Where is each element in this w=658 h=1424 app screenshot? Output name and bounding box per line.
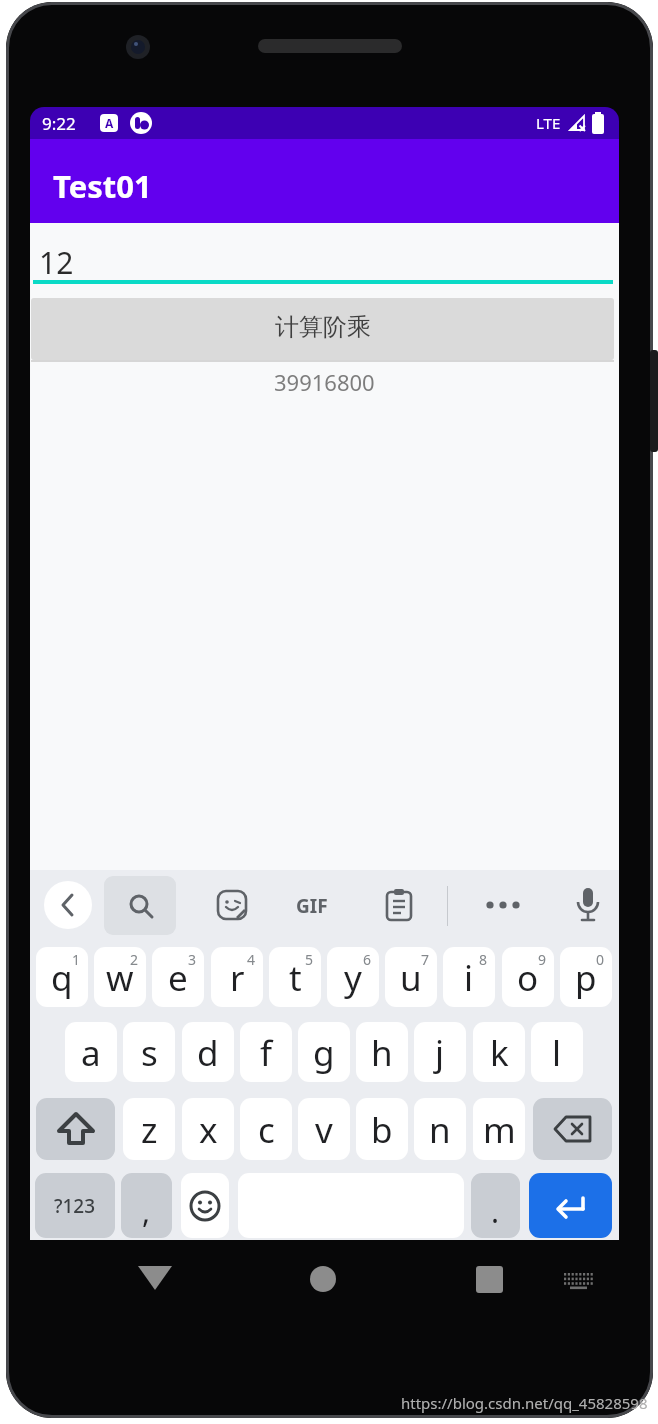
staticText: j xyxy=(435,1029,445,1077)
button[interactable] xyxy=(574,888,602,924)
staticText: . xyxy=(491,1191,500,1232)
button[interactable]: n xyxy=(414,1098,466,1160)
button[interactable]: . xyxy=(471,1173,520,1238)
staticText: i xyxy=(464,954,474,1002)
staticText: f xyxy=(260,1029,273,1077)
staticText: p xyxy=(575,954,597,1002)
staticText: 5 xyxy=(305,950,314,969)
staticText: Test01 xyxy=(53,165,152,207)
button[interactable]: l xyxy=(531,1022,583,1082)
staticText: 3 xyxy=(188,950,197,969)
button[interactable]: i xyxy=(443,947,495,1007)
staticText: 计算阶乘 xyxy=(275,312,371,342)
button[interactable]: k xyxy=(473,1022,525,1082)
button[interactable] xyxy=(476,1266,503,1293)
button[interactable]: q xyxy=(36,947,88,1007)
button[interactable]: p xyxy=(560,947,612,1007)
staticText: ?123 xyxy=(54,1193,96,1219)
button[interactable]: , xyxy=(121,1173,172,1238)
button[interactable]: s xyxy=(123,1022,175,1082)
button[interactable]: t xyxy=(269,947,321,1007)
button[interactable]: y xyxy=(327,947,379,1007)
staticText: h xyxy=(371,1029,393,1077)
staticText: c xyxy=(258,1106,275,1154)
button[interactable]: f xyxy=(240,1022,292,1082)
button[interactable] xyxy=(385,889,413,921)
staticText: , xyxy=(142,1191,151,1232)
button[interactable] xyxy=(533,1098,612,1160)
button[interactable]: b xyxy=(356,1098,408,1160)
staticText: 1 xyxy=(72,950,81,969)
staticText: e xyxy=(168,954,188,1002)
button[interactable]: c xyxy=(240,1098,292,1160)
button[interactable]: 计算阶乘 xyxy=(31,298,614,360)
staticText: q xyxy=(51,954,73,1002)
staticText: y xyxy=(344,954,362,1002)
button[interactable]: z xyxy=(123,1098,175,1160)
button[interactable]: w xyxy=(94,947,146,1007)
staticText: b xyxy=(371,1106,393,1154)
staticText: g xyxy=(313,1029,335,1077)
staticText: s xyxy=(141,1029,158,1077)
button[interactable]: a xyxy=(65,1022,117,1082)
staticText: 39916800 xyxy=(274,367,375,397)
button[interactable] xyxy=(562,1270,595,1292)
button[interactable] xyxy=(104,876,176,935)
button[interactable]: GIF xyxy=(296,893,328,919)
button[interactable]: e xyxy=(152,947,204,1007)
staticText: d xyxy=(197,1029,219,1077)
staticText: t xyxy=(289,954,302,1002)
staticText: 0 xyxy=(596,950,605,969)
staticText: 9:22 xyxy=(42,112,76,135)
staticText: v xyxy=(315,1106,333,1154)
staticText: x xyxy=(199,1106,218,1154)
staticText: 2 xyxy=(130,950,139,969)
button[interactable] xyxy=(310,1266,336,1292)
staticText: m xyxy=(483,1106,516,1154)
button[interactable] xyxy=(217,890,247,920)
staticText: 12 xyxy=(39,242,74,283)
staticText: z xyxy=(141,1106,158,1154)
button[interactable] xyxy=(529,1173,612,1238)
staticText: u xyxy=(400,954,422,1002)
staticText: 7 xyxy=(421,950,430,969)
button[interactable]: h xyxy=(356,1022,408,1082)
button[interactable]: g xyxy=(298,1022,350,1082)
button[interactable] xyxy=(137,1264,173,1292)
staticText: r xyxy=(230,954,245,1002)
button[interactable]: r xyxy=(211,947,263,1007)
staticText: 4 xyxy=(247,950,256,969)
staticText: a xyxy=(81,1029,101,1077)
staticText: 9 xyxy=(538,950,547,969)
button[interactable]: m xyxy=(473,1098,525,1160)
staticText: 8 xyxy=(479,950,488,969)
staticText: https://blog.csdn.net/qq_45828598 xyxy=(401,1393,648,1413)
staticText: n xyxy=(429,1106,451,1154)
staticText: k xyxy=(490,1029,509,1077)
staticText: A xyxy=(105,115,114,131)
button[interactable]: ?123 xyxy=(35,1173,115,1238)
button[interactable]: v xyxy=(298,1098,350,1160)
staticText: LTE xyxy=(536,113,561,133)
button[interactable]: o xyxy=(502,947,554,1007)
button[interactable]: u xyxy=(385,947,437,1007)
staticText: w xyxy=(106,954,134,1002)
button[interactable] xyxy=(181,1173,229,1238)
button[interactable] xyxy=(44,881,92,929)
button[interactable]: j xyxy=(414,1022,466,1082)
staticText: o xyxy=(517,954,539,1002)
button[interactable]: d xyxy=(182,1022,234,1082)
staticText: 6 xyxy=(363,950,372,969)
button[interactable] xyxy=(485,900,521,910)
staticText: l xyxy=(552,1029,562,1077)
button[interactable] xyxy=(36,1098,115,1160)
button[interactable]: x xyxy=(182,1098,234,1160)
